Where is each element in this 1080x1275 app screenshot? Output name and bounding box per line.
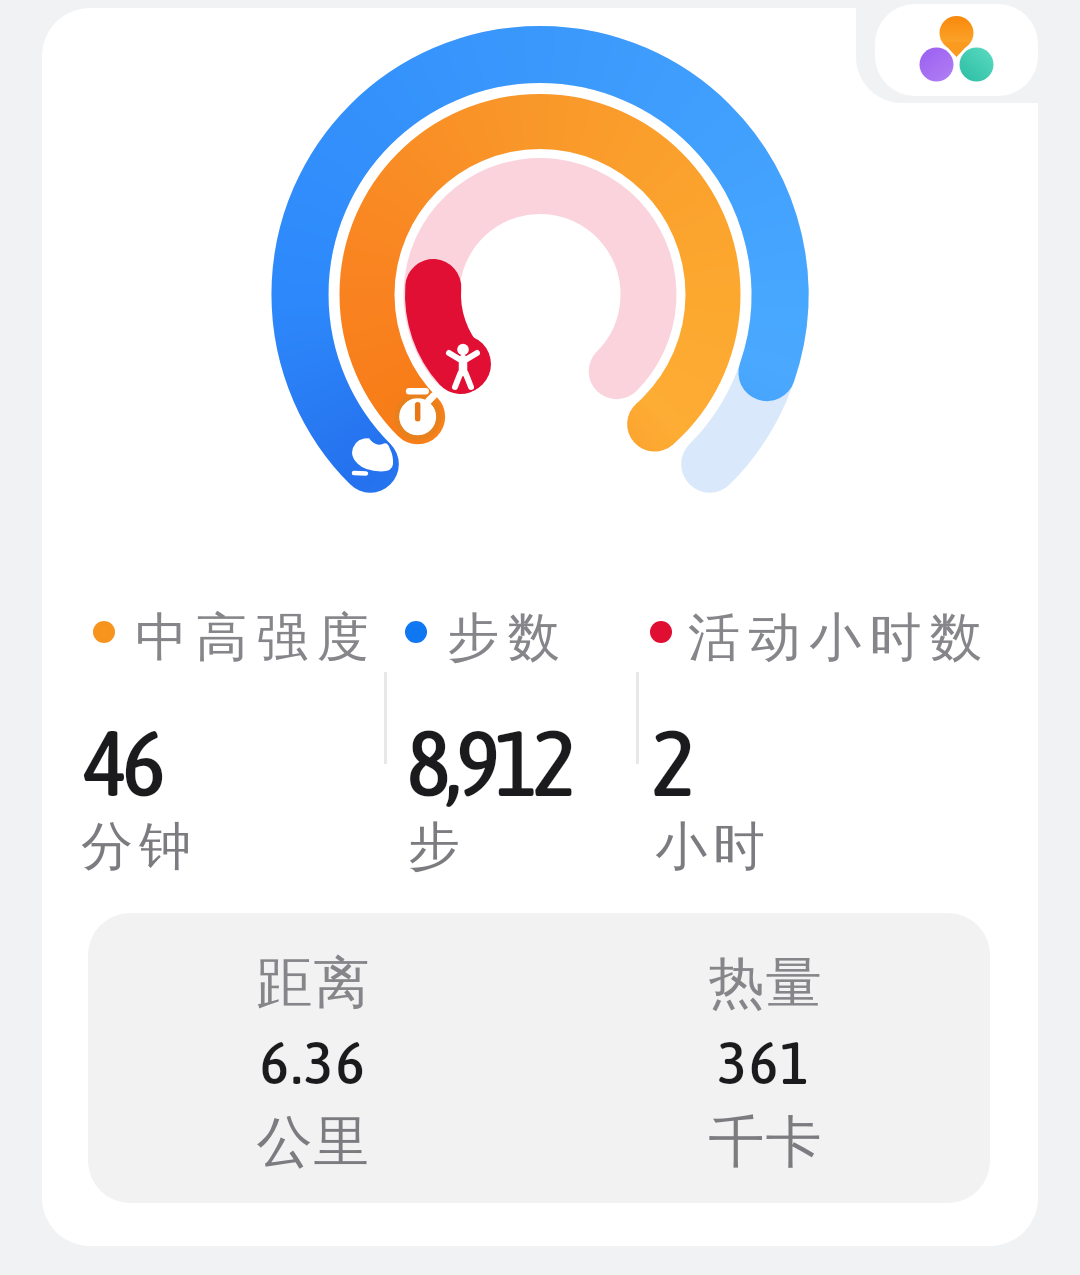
staticText: 千卡: [708, 1107, 822, 1178]
staticText: 步: [405, 814, 463, 880]
staticText: 6.36: [260, 1027, 367, 1097]
staticText: 步数: [443, 605, 564, 671]
staticText: 小时: [652, 814, 768, 880]
staticText: 2: [652, 710, 691, 815]
staticText: 46: [84, 710, 161, 815]
staticText: 公里: [256, 1107, 370, 1178]
button[interactable]: [875, 4, 1038, 96]
staticText: 8,912: [407, 710, 572, 815]
staticText: 距离: [256, 948, 370, 1019]
staticText: 361: [718, 1027, 812, 1097]
staticText: 活动小时数: [688, 605, 991, 671]
staticText: 热量: [708, 948, 822, 1019]
staticText: 分钟: [78, 814, 194, 880]
button[interactable]: 距离: [88, 913, 990, 1203]
staticText: 中高强度: [131, 605, 373, 671]
